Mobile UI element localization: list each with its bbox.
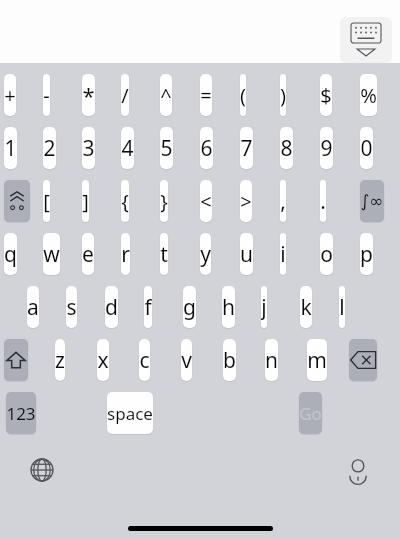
button[interactable]: 7 [240, 127, 253, 169]
button[interactable]: Shift [4, 339, 28, 381]
button[interactable]: h [222, 286, 235, 328]
button[interactable]: s [66, 286, 77, 328]
staticText: + [4, 82, 16, 109]
button[interactable]: ] [82, 180, 89, 222]
button[interactable]: 3 [82, 127, 95, 169]
button[interactable]: q [4, 233, 17, 275]
staticText: ^ [160, 82, 172, 109]
staticText: d [105, 293, 118, 322]
staticText: p [360, 240, 373, 269]
button[interactable]: r [121, 233, 130, 275]
button[interactable]: Hide keyboard [340, 17, 392, 63]
button[interactable]: Backspace [349, 339, 377, 381]
staticText: space [107, 402, 153, 425]
button[interactable]: / [121, 74, 129, 116]
button[interactable]: d [105, 286, 118, 328]
button[interactable]: c [139, 339, 150, 381]
button[interactable]: < [200, 180, 212, 222]
button[interactable]: More symbols [4, 180, 30, 222]
staticText: l [339, 293, 345, 322]
button[interactable]: b [223, 339, 236, 381]
button[interactable]: + [4, 74, 16, 116]
button[interactable]: 4 [121, 127, 134, 169]
button[interactable]: m [307, 339, 327, 381]
staticText: 2 [43, 134, 56, 163]
staticText: h [222, 293, 235, 322]
staticText: > [240, 188, 252, 215]
staticText: e [82, 240, 94, 269]
staticText: t [160, 240, 168, 269]
button[interactable]: y [200, 233, 211, 275]
button[interactable]: e [82, 233, 94, 275]
button[interactable]: ^ [160, 74, 172, 116]
staticText: f [144, 293, 152, 322]
button[interactable]: space [107, 392, 153, 434]
staticText: w [43, 240, 60, 269]
button[interactable]: 1 [4, 127, 17, 169]
staticText: z [55, 346, 65, 375]
staticText: * [82, 80, 95, 110]
button[interactable]: a [27, 286, 39, 328]
staticText: < [200, 188, 212, 215]
staticText: } [160, 188, 168, 215]
button[interactable]: > [240, 180, 252, 222]
staticText: i [280, 240, 286, 269]
staticText: b [223, 346, 236, 375]
staticText: q [4, 240, 17, 269]
staticText: k [300, 293, 312, 322]
button[interactable]: u [240, 233, 253, 275]
button[interactable]: [ [43, 180, 50, 222]
staticText: s [66, 293, 77, 322]
button[interactable]: z [55, 339, 65, 381]
button[interactable]: g [183, 286, 196, 328]
staticText: 1 [4, 134, 17, 163]
staticText: u [240, 240, 253, 269]
button[interactable]: Go [299, 392, 322, 434]
button[interactable]: ( [240, 74, 246, 116]
button[interactable]: 9 [320, 127, 333, 169]
staticText: c [139, 346, 150, 375]
button[interactable]: Dictation [336, 448, 380, 492]
button[interactable]: . [320, 180, 326, 222]
staticText: ] [82, 188, 89, 215]
button[interactable]: $ [320, 74, 332, 116]
button[interactable]: 2 [43, 127, 56, 169]
button[interactable]: ) [280, 74, 286, 116]
staticText: r [121, 240, 130, 269]
button[interactable]: % [360, 74, 377, 116]
button[interactable]: Change keyboard language [20, 448, 64, 492]
button[interactable]: 6 [200, 127, 213, 169]
button[interactable]: x [97, 339, 109, 381]
staticText: - [43, 82, 50, 109]
staticText: 123 [6, 402, 36, 425]
button[interactable]: j [261, 286, 267, 328]
button[interactable]: , [280, 180, 286, 222]
staticText: ( [240, 82, 246, 109]
button[interactable]: k [300, 286, 312, 328]
staticText: [ [43, 188, 50, 215]
staticText: % [360, 82, 377, 109]
button[interactable]: l [339, 286, 345, 328]
button[interactable]: * [82, 74, 95, 116]
button[interactable]: 0 [360, 127, 373, 169]
button[interactable]: n [265, 339, 278, 381]
staticText: $ [320, 82, 332, 109]
button[interactable]: p [360, 233, 373, 275]
button[interactable]: = [200, 74, 212, 116]
button[interactable]: ∫∞ [360, 180, 384, 222]
button[interactable]: t [160, 233, 168, 275]
button[interactable]: o [320, 233, 333, 275]
button[interactable]: v [181, 339, 192, 381]
button[interactable]: - [43, 74, 50, 116]
button[interactable]: 5 [160, 127, 173, 169]
staticText: 4 [121, 134, 134, 163]
staticText: a [27, 293, 39, 322]
button[interactable]: f [144, 286, 152, 328]
button[interactable]: } [160, 180, 168, 222]
button[interactable]: 123 [6, 392, 36, 434]
button[interactable]: 8 [280, 127, 293, 169]
button[interactable]: { [121, 180, 129, 222]
button[interactable]: w [43, 233, 60, 275]
staticText: j [261, 293, 267, 322]
button[interactable]: i [280, 233, 286, 275]
